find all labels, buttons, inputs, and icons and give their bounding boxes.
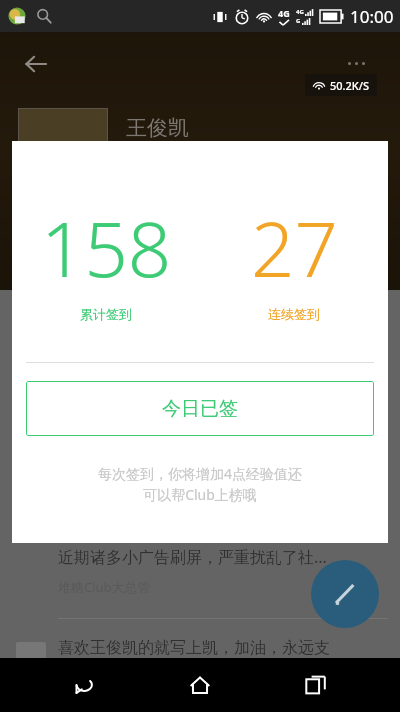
- staticText: 每次签到，你将增加4点经验值还 可以帮Club上榜哦: [30, 464, 370, 505]
- staticText: 4G: [296, 8, 304, 16]
- button[interactable]: Recent apps: [284, 658, 348, 712]
- staticText: 累计签到: [80, 306, 132, 322]
- staticText: 近期诸多小广告刷屏，严重扰乱了社...: [58, 546, 327, 568]
- staticText: 喜欢王俊凯的就写上凯，加油，永远支: [58, 638, 330, 658]
- staticText: 4G: [278, 7, 290, 19]
- staticText: 50.2K/S: [330, 78, 370, 93]
- button[interactable]: More options: [348, 50, 384, 76]
- staticText: 王俊凯: [126, 115, 189, 141]
- staticText: G: [296, 17, 301, 25]
- staticText: 27: [251, 196, 338, 300]
- button[interactable]: Back: [52, 658, 116, 712]
- staticText: 今日已签: [162, 397, 238, 421]
- button[interactable]: Home: [168, 658, 232, 712]
- button[interactable]: Compose post: [311, 560, 379, 628]
- button[interactable]: 今日已签: [26, 381, 374, 436]
- staticText: 10:00: [350, 5, 394, 28]
- staticText: 堆糖Club大总管: [58, 578, 151, 596]
- button[interactable]: Back: [16, 44, 56, 84]
- staticText: 158: [41, 196, 172, 300]
- staticText: 连续签到: [268, 306, 320, 322]
